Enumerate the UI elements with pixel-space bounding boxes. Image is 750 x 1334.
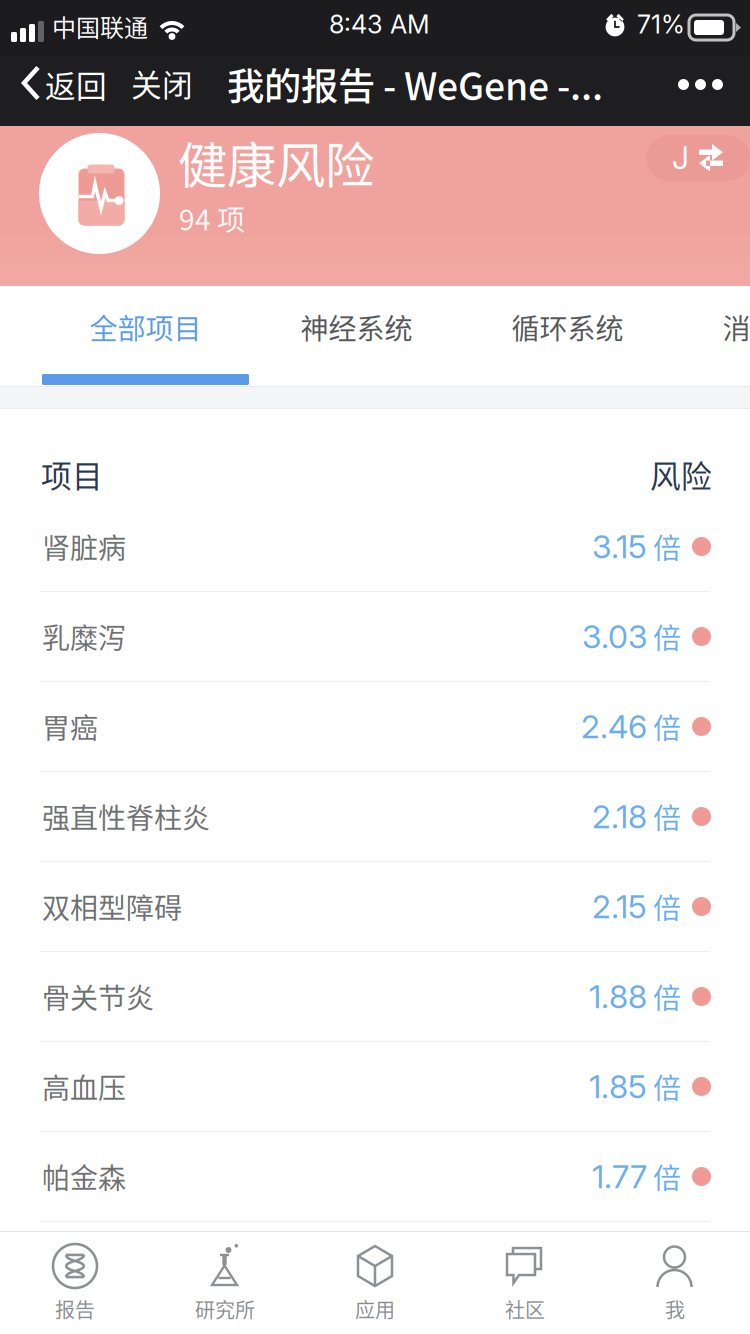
staticText: 2.46	[581, 707, 647, 746]
staticText: 中国联通	[52, 9, 148, 44]
staticText: 循环系统	[511, 307, 623, 347]
button[interactable]: 双相型障碍	[0, 862, 750, 952]
button[interactable]: 研究所	[150, 1231, 300, 1334]
staticText: 高血压	[42, 1066, 126, 1107]
staticText: 94 项	[179, 198, 245, 238]
button[interactable]: 乳糜泻	[0, 592, 750, 682]
button[interactable]: 帕金森	[0, 1132, 750, 1222]
staticText: 1.88	[589, 977, 647, 1016]
staticText: 我的报告 - WeGene -...	[227, 57, 603, 111]
staticText: 骨关节炎	[42, 976, 154, 1017]
staticText: 应用	[355, 1294, 395, 1323]
button[interactable]: 返回	[17, 47, 111, 119]
staticText: 倍	[647, 526, 681, 567]
staticText: 社区	[505, 1294, 545, 1323]
staticText: 倍	[647, 886, 681, 927]
staticText: 强直性脊柱炎	[42, 796, 210, 837]
staticText: 风险	[650, 452, 712, 496]
button[interactable]: 应用	[300, 1231, 450, 1334]
staticText: 消化系统	[722, 307, 750, 347]
button[interactable]: More options	[666, 61, 735, 108]
staticText: 8:43 AM	[329, 9, 430, 40]
button[interactable]: Switch profile	[646, 135, 750, 181]
staticText: 1.77	[592, 1157, 647, 1196]
button[interactable]: 肾脏病	[0, 502, 750, 592]
staticText: 关闭	[131, 61, 193, 105]
staticText: 帕金森	[42, 1156, 126, 1197]
staticText: 倍	[647, 706, 681, 747]
staticText: 2.18	[592, 797, 647, 836]
staticText: 倍	[647, 1156, 681, 1197]
staticText: J	[672, 139, 689, 176]
staticText: 倍	[647, 976, 681, 1017]
button[interactable]: 骨关节炎	[0, 952, 750, 1042]
button[interactable]: 胃癌	[0, 682, 750, 772]
staticText: 71%	[637, 9, 685, 40]
button[interactable]: 循环系统	[462, 283, 673, 371]
staticText: 报告	[55, 1294, 95, 1323]
button[interactable]: 我	[600, 1231, 750, 1334]
staticText: 全部项目	[89, 307, 201, 347]
button[interactable]: 高血压	[0, 1042, 750, 1132]
staticText: 3.03	[582, 617, 647, 656]
staticText: 肾脏病	[42, 526, 126, 567]
staticText: 乳糜泻	[42, 616, 126, 657]
staticText: 健康风险	[178, 126, 374, 197]
staticText: 倍	[647, 796, 681, 837]
button[interactable]: 强直性脊柱炎	[0, 772, 750, 862]
staticText: 胃癌	[42, 706, 98, 747]
staticText: 3.15	[592, 527, 647, 566]
staticText: 研究所	[195, 1294, 255, 1323]
staticText: 1.85	[589, 1067, 647, 1106]
button[interactable]: 神经系统	[251, 283, 462, 371]
button[interactable]: 消化系统	[673, 283, 750, 371]
staticText: 倍	[647, 1066, 681, 1107]
button[interactable]: 社区	[450, 1231, 600, 1334]
button[interactable]: 关闭	[127, 49, 197, 117]
staticText: 我	[665, 1294, 685, 1323]
staticText: 项目	[41, 452, 103, 496]
button[interactable]: 全部项目	[40, 283, 251, 371]
staticText: 2.15	[592, 887, 647, 926]
staticText: 倍	[647, 616, 681, 657]
staticText: 双相型障碍	[42, 886, 182, 927]
button[interactable]: 报告	[0, 1231, 150, 1334]
staticText: 返回	[45, 62, 107, 107]
staticText: 神经系统	[300, 307, 412, 347]
